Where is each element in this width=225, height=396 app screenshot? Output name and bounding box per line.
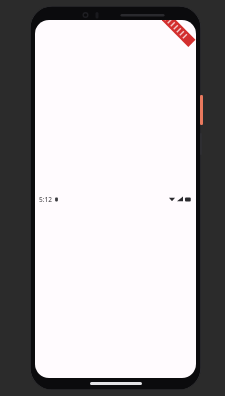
staticText: 5:12 [39,195,52,204]
other: Power button [200,95,203,125]
